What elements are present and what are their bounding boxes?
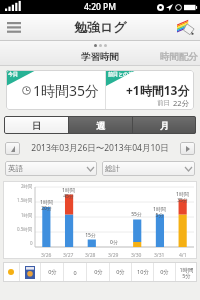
- staticText: 0: [30, 240, 33, 246]
- staticText: 1時間35分: [33, 81, 100, 100]
- button[interactable]: 今日: [6, 70, 105, 110]
- staticText: 1時間 20分: [40, 199, 53, 212]
- button[interactable]: 0: [64, 262, 86, 282]
- staticText: 1時間 5分: [153, 206, 166, 219]
- button[interactable]: 総計: [102, 161, 195, 176]
- staticText: 前日: [157, 99, 170, 107]
- button[interactable]: 英語: [5, 161, 97, 176]
- staticText: 22分: [173, 98, 190, 108]
- staticText: 55分: [131, 211, 142, 218]
- staticText: 英語: [8, 164, 23, 173]
- staticText: 0.5時間: [17, 226, 33, 232]
- button[interactable]: 前日との差: [106, 70, 194, 110]
- staticText: 3/31: [154, 252, 165, 259]
- staticText: 3/28: [85, 252, 96, 259]
- button[interactable]: 週: [69, 116, 132, 134]
- button[interactable]: 0分: [41, 262, 63, 282]
- button[interactable]: 1時間 5分: [176, 262, 197, 282]
- staticText: 0: [73, 269, 77, 276]
- button[interactable]: Previous: [5, 142, 20, 155]
- staticText: 0分: [110, 239, 118, 246]
- staticText: 3/30: [131, 252, 142, 259]
- button[interactable]: Menu: [0, 14, 28, 40]
- staticText: 4:20 PM: [84, 1, 117, 13]
- button[interactable]: 月: [133, 116, 196, 134]
- button[interactable]: 0分: [87, 262, 109, 282]
- button[interactable]: Next: [180, 142, 195, 155]
- staticText: 0分: [160, 268, 169, 276]
- button[interactable]: 0分: [110, 262, 131, 282]
- button[interactable]: 0分: [154, 262, 175, 282]
- staticText: 2時間: [21, 183, 33, 189]
- button[interactable]: Edit: [172, 14, 200, 40]
- staticText: 週: [96, 120, 105, 131]
- staticText: +1時間13分: [126, 82, 190, 98]
- staticText: 月: [160, 120, 169, 131]
- staticText: 3/26: [41, 252, 52, 259]
- staticText: 勉強ログ: [74, 19, 127, 35]
- staticText: 日: [32, 120, 41, 131]
- staticText: 10分: [137, 268, 149, 276]
- button[interactable]: 時間配分: [160, 51, 200, 65]
- staticText: 15分: [85, 232, 96, 239]
- staticText: 1.5時間: [17, 197, 33, 203]
- staticText: 今日: [8, 71, 18, 77]
- staticText: 1時間: [21, 212, 33, 218]
- staticText: 1時間 5分: [179, 266, 194, 279]
- staticText: 総計: [105, 164, 120, 173]
- staticText: 1時間 35分: [176, 191, 189, 204]
- staticText: 0分: [94, 268, 103, 276]
- staticText: 2013年03月26日〜2013年04月10日: [31, 142, 169, 154]
- staticText: 0分: [116, 268, 125, 276]
- staticText: 1時間 45分: [62, 187, 75, 200]
- button[interactable]: 日: [4, 116, 68, 134]
- staticText: 3/27: [63, 252, 74, 259]
- staticText: 3/29: [108, 252, 119, 259]
- button[interactable]: 10分: [132, 262, 153, 282]
- staticText: 0分: [48, 268, 57, 276]
- staticText: 4/1: [179, 252, 187, 259]
- staticText: 前日との差: [108, 71, 134, 77]
- button[interactable]: 学習時間: [81, 51, 119, 65]
